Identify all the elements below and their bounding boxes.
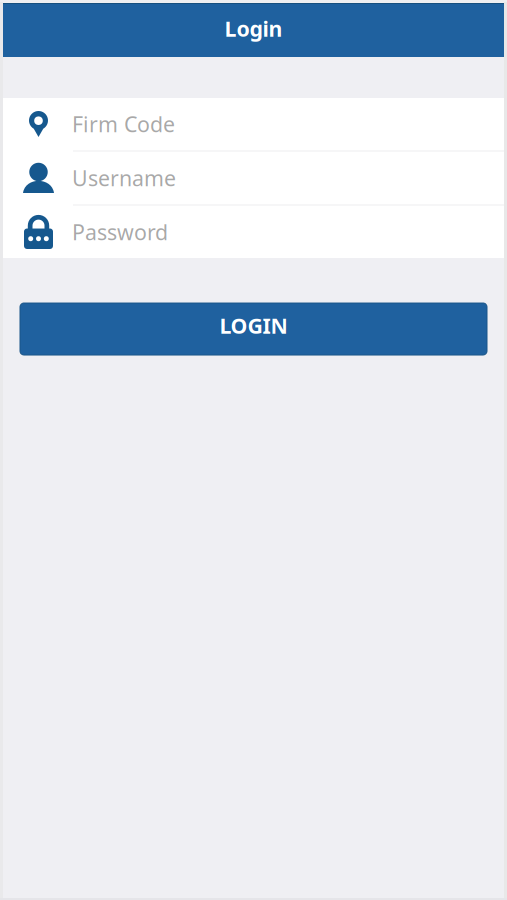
staticText: Username (72, 164, 176, 192)
button[interactable]: Firm Code (0, 98, 507, 150)
button[interactable]: Password (0, 206, 507, 258)
button[interactable]: LOGIN (20, 303, 487, 355)
staticText: Password (72, 218, 168, 246)
staticText: Firm Code (72, 110, 175, 138)
staticText: LOGIN (219, 311, 287, 340)
button[interactable]: Username (0, 152, 507, 204)
staticText: Login (224, 14, 282, 43)
